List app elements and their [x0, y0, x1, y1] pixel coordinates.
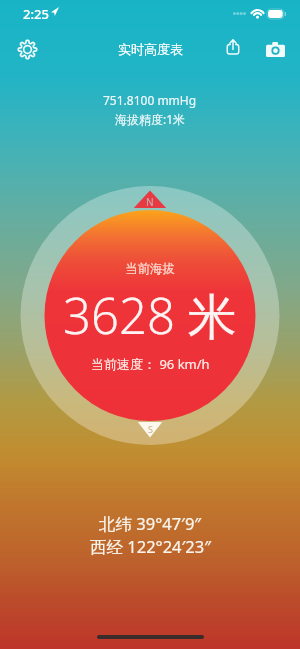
staticText: 实时高度表: [118, 41, 183, 57]
staticText: 751.8100 mmHg: [103, 92, 197, 108]
staticText: 海拔精度:1米: [115, 111, 186, 127]
button[interactable]: Share: [213, 27, 253, 67]
staticText: S: [148, 423, 153, 435]
staticText: 西经 122°24′23″: [90, 535, 211, 558]
button[interactable]: Settings: [7, 29, 47, 69]
staticText: 2:25: [23, 5, 49, 23]
staticText: 当前海拔: [125, 261, 175, 277]
staticText: 北纬 39°47′9″: [99, 512, 202, 535]
staticText: 当前速度： 96 km/h: [91, 355, 210, 373]
staticText: N: [146, 195, 154, 209]
button[interactable]: Refresh altitude: [45, 210, 256, 421]
staticText: 3628 米: [63, 282, 237, 349]
button[interactable]: Camera: [255, 29, 295, 69]
